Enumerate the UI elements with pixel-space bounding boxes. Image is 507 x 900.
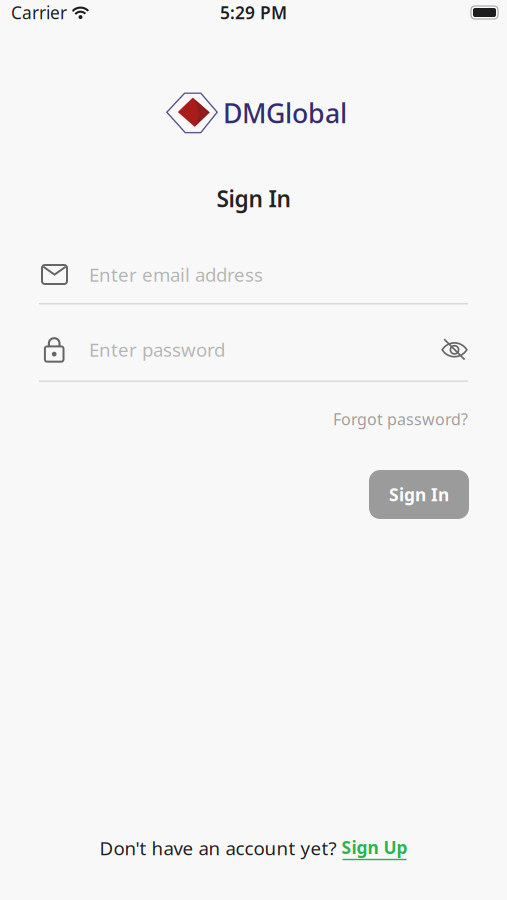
staticText: 5:29 PM: [220, 1, 287, 24]
staticText: Enter email address: [89, 262, 263, 287]
staticText: Forgot password?: [333, 408, 468, 430]
button[interactable]: Sign In: [369, 470, 469, 519]
staticText: Enter password: [89, 337, 225, 362]
staticText: DMGlobal: [223, 95, 347, 131]
staticText: Sign Up: [341, 836, 407, 859]
staticText: Carrier: [11, 1, 67, 24]
button[interactable]: Enter password: [39, 335, 435, 363]
button[interactable]: Sign Up: [341, 836, 407, 860]
button[interactable]: Forgot password?: [333, 408, 468, 430]
staticText: Sign In: [389, 483, 449, 506]
staticText: Don't have an account yet?: [99, 836, 341, 860]
staticText: Sign In: [216, 183, 290, 213]
button[interactable]: Show password: [435, 336, 468, 363]
button[interactable]: Enter email address: [39, 260, 468, 289]
